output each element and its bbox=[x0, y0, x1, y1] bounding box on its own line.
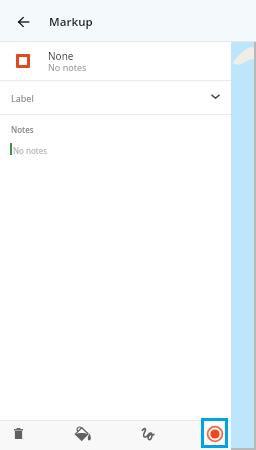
staticText: Markup bbox=[49, 14, 93, 30]
button[interactable]: Draw bbox=[132, 419, 164, 448]
staticText: None bbox=[48, 49, 74, 63]
button[interactable]: Pick colour bbox=[204, 421, 225, 445]
staticText: No notes bbox=[48, 61, 87, 73]
button[interactable]: Delete bbox=[2, 419, 34, 448]
button[interactable]: None bbox=[0, 42, 231, 80]
staticText: Notes bbox=[11, 124, 34, 135]
button[interactable]: Label bbox=[0, 81, 231, 114]
staticText: Label bbox=[11, 92, 34, 104]
button[interactable]: Back bbox=[12, 11, 34, 33]
staticText: No notes bbox=[13, 145, 48, 156]
button[interactable]: Fill colour bbox=[67, 419, 99, 448]
